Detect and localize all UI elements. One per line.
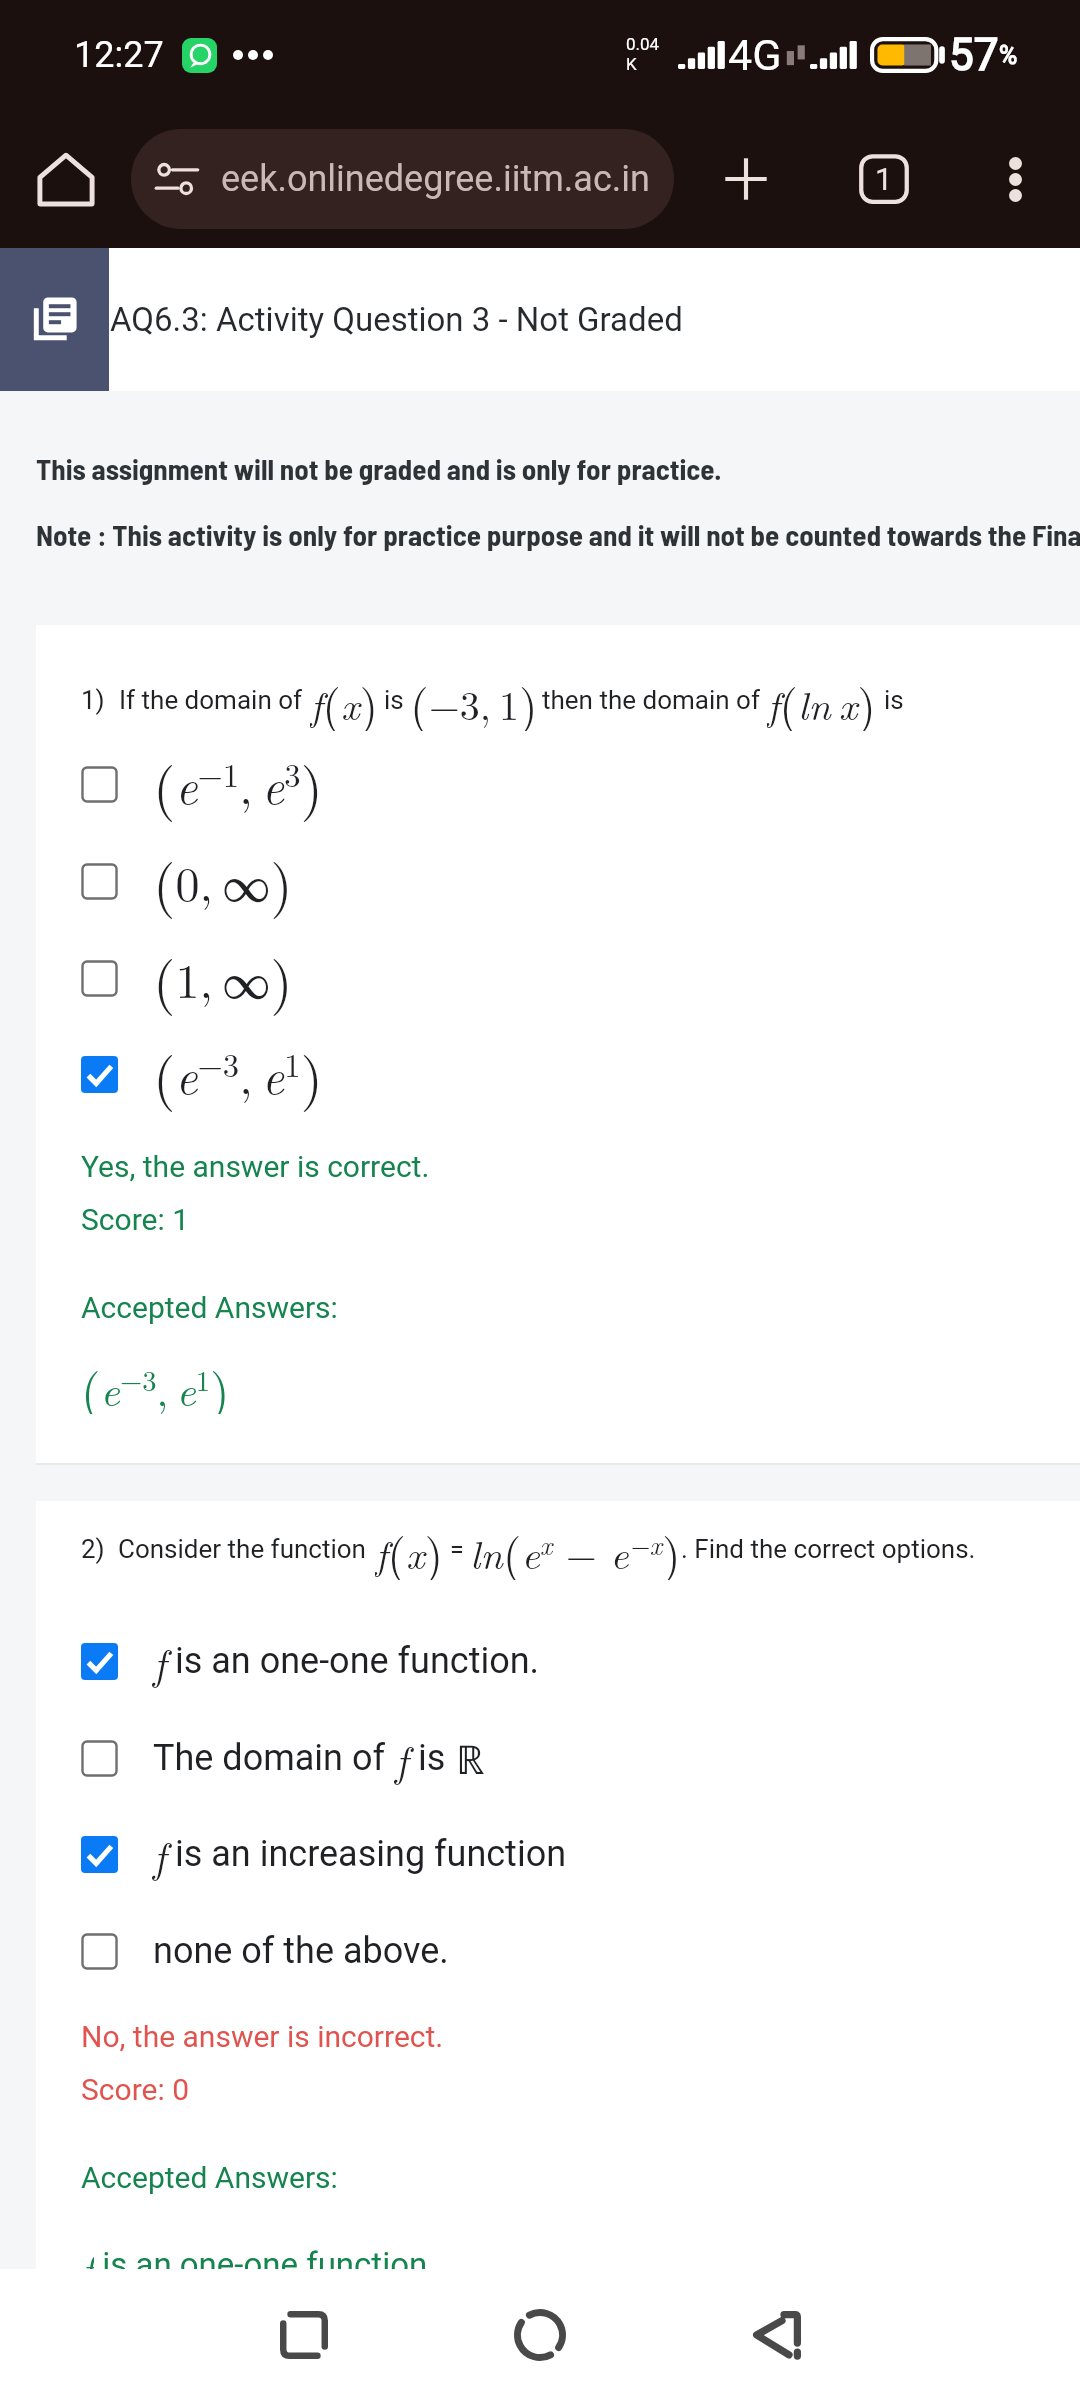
button[interactable]: More options bbox=[950, 110, 1080, 248]
staticText: f bbox=[395, 1729, 408, 1788]
staticText: is an one-one function bbox=[94, 2245, 428, 2269]
staticText: 1 bbox=[875, 161, 893, 197]
staticText: Score: 0 bbox=[81, 2072, 189, 2107]
staticText: 2) bbox=[81, 1534, 105, 1564]
staticText: eek.onlinedegree.iitm.ac.in bbox=[221, 158, 650, 200]
staticText: The domain of bbox=[153, 1737, 385, 1779]
staticText: f(x) bbox=[310, 669, 379, 731]
staticText: If the domain of bbox=[119, 685, 303, 715]
staticText: Consider the function bbox=[118, 1534, 366, 1564]
staticText: No, the answer is incorrect. bbox=[81, 2019, 444, 2054]
button[interactable]: eek.onlinedegree.iitm.ac.in bbox=[131, 129, 674, 229]
staticText: f bbox=[153, 1632, 166, 1691]
button[interactable]: Recents bbox=[226, 2269, 382, 2400]
staticText: 0.04 bbox=[626, 34, 660, 54]
staticText: then the domain of bbox=[542, 685, 760, 715]
button[interactable]: Home bbox=[462, 2269, 618, 2400]
staticText: Score: 1 bbox=[81, 1202, 189, 1237]
staticText: K bbox=[626, 54, 637, 74]
staticText: is an increasing function bbox=[175, 1833, 567, 1875]
staticText: f(ln x) bbox=[767, 669, 876, 731]
button[interactable]: The domain of bbox=[36, 1710, 1080, 1806]
staticText: (e−3, e1) bbox=[81, 1352, 230, 1414]
staticText: This assignment will not be graded and i… bbox=[36, 451, 722, 486]
button[interactable]: (e−3, e1) bbox=[36, 1026, 1080, 1122]
staticText: (e−3, e1) bbox=[153, 1033, 323, 1115]
staticText: 4G bbox=[728, 30, 782, 80]
staticText: = bbox=[450, 1535, 464, 1564]
staticText: Note : This activity is only for practic… bbox=[36, 517, 1080, 552]
staticText: f bbox=[153, 1825, 166, 1884]
button[interactable]: Tabs bbox=[817, 110, 950, 248]
staticText: f(x) bbox=[375, 1518, 444, 1580]
staticText: ℝ bbox=[456, 1731, 485, 1785]
staticText: Yes, the answer is correct. bbox=[81, 1149, 430, 1184]
staticText: (1, ∞) bbox=[153, 937, 293, 1019]
staticText: 57 bbox=[949, 29, 999, 81]
staticText: Accepted Answers: bbox=[81, 1290, 338, 1325]
staticText: (e−1, e3) bbox=[153, 743, 323, 825]
staticText: 1) bbox=[81, 685, 105, 715]
button[interactable]: New tab bbox=[674, 110, 817, 248]
staticText: none of the above. bbox=[153, 1930, 449, 1972]
staticText: % bbox=[999, 41, 1018, 70]
staticText: f bbox=[81, 2238, 94, 2269]
staticText: (−3, 1) bbox=[410, 669, 538, 731]
button[interactable]: (1, ∞) bbox=[36, 930, 1080, 1026]
staticText: is an one-one function. bbox=[175, 1640, 540, 1682]
staticText: Accepted Answers: bbox=[81, 2160, 338, 2195]
button[interactable]: none of the above. bbox=[36, 1903, 1080, 1999]
staticText: 12:27 bbox=[74, 34, 164, 76]
button[interactable]: Home bbox=[0, 110, 131, 248]
button[interactable]: Back bbox=[698, 2269, 854, 2400]
button[interactable]: (0, ∞) bbox=[36, 833, 1080, 929]
staticText: is bbox=[418, 1737, 446, 1779]
staticText: . Find the correct options. bbox=[681, 1534, 976, 1564]
staticText: is bbox=[384, 685, 404, 715]
staticText: AQ6.3: Activity Question 3 - Not Graded bbox=[110, 300, 683, 339]
staticText: (0, ∞) bbox=[153, 840, 293, 922]
button[interactable]: f bbox=[36, 1613, 1080, 1709]
button[interactable]: f bbox=[36, 1806, 1080, 1902]
staticText: is bbox=[884, 685, 904, 715]
button[interactable]: (e−1, e3) bbox=[36, 736, 1080, 832]
staticText: ln(ex − e−x) bbox=[470, 1518, 681, 1580]
